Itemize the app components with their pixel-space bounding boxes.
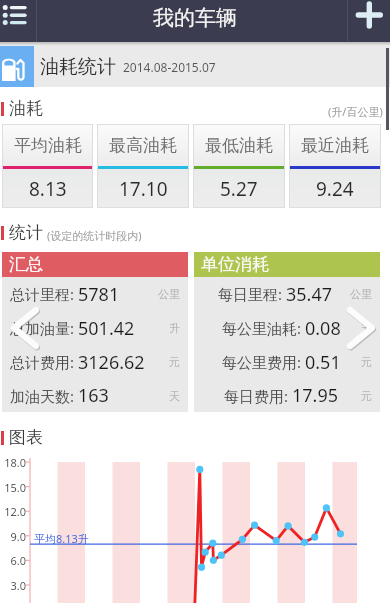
button[interactable]: 最高油耗 [97, 124, 189, 208]
staticText: 平均8.13升 [34, 531, 89, 546]
staticText: 最近油耗 [301, 135, 369, 156]
staticText: 元 [361, 355, 372, 369]
button[interactable]: Previous [10, 306, 40, 350]
staticText: 0.08 [305, 316, 341, 341]
button[interactable]: Add [347, 0, 390, 42]
staticText: 3.0 [0, 578, 26, 593]
staticText: 统计 [9, 222, 43, 243]
staticText: 汇总 [9, 254, 43, 275]
staticText: 最高油耗 [109, 135, 177, 156]
button[interactable]: Menu [0, 0, 36, 42]
staticText: 17.10 [119, 176, 168, 202]
staticText: (升/百公里) [328, 104, 383, 119]
staticText: 加油天数: [10, 386, 75, 406]
staticText: 油耗统计 [40, 55, 116, 79]
staticText: 163 [78, 383, 109, 408]
staticText: 元 [361, 389, 372, 403]
staticText: 每公里油耗: [222, 318, 302, 338]
staticText: 升 [361, 321, 372, 335]
staticText: 元 [169, 355, 180, 369]
button[interactable]: Fuel statistics [0, 46, 34, 87]
staticText: 图表 [9, 427, 43, 448]
staticText: 每日里程: [218, 284, 283, 304]
staticText: 9.0 [0, 529, 26, 544]
staticText: 3126.62 [78, 350, 145, 375]
staticText: 公里 [158, 287, 180, 301]
staticText: 每公里费用: [222, 352, 302, 372]
staticText: 总计费用: [10, 352, 75, 372]
staticText: 平均油耗 [14, 135, 82, 156]
staticText: 8.13 [29, 176, 67, 202]
staticText: 12.0 [0, 504, 26, 519]
staticText: 我的车辆 [153, 5, 237, 31]
staticText: 35.47 [286, 282, 333, 307]
staticText: 单位消耗 [201, 254, 269, 275]
staticText: 9.24 [316, 176, 354, 202]
staticText: 501.42 [78, 316, 135, 341]
staticText: 总加油量: [10, 318, 75, 338]
button[interactable]: Next [346, 306, 376, 350]
staticText: 5781 [78, 282, 120, 307]
button[interactable]: 平均油耗 [2, 124, 93, 208]
staticText: 油耗 [9, 98, 43, 119]
button[interactable]: 最低油耗 [193, 124, 285, 208]
staticText: 18.0 [0, 455, 26, 470]
staticText: 2014.08-2015.07 [123, 59, 216, 75]
staticText: 最低油耗 [205, 135, 273, 156]
staticText: 0.51 [305, 350, 341, 375]
staticText: 17.95 [292, 383, 339, 408]
staticText: 总计里程: [10, 284, 75, 304]
staticText: 公里 [350, 287, 372, 301]
staticText: 升 [169, 321, 180, 335]
staticText: 每日费用: [224, 386, 289, 406]
staticText: 15.0 [0, 480, 26, 495]
staticText: (设定的统计时段内) [47, 228, 142, 243]
button[interactable]: 最近油耗 [289, 124, 381, 208]
staticText: 5.27 [220, 176, 258, 202]
staticText: 6.0 [0, 553, 26, 568]
staticText: 天 [169, 389, 180, 403]
